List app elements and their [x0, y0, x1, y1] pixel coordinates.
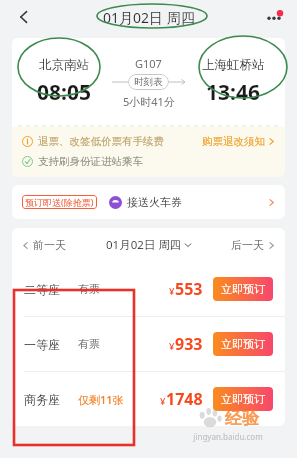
button[interactable]: 商务座 — [12, 372, 285, 426]
button[interactable]: 二等座 — [12, 262, 285, 316]
staticText: 商务座 — [24, 392, 60, 407]
staticText: ¥ — [169, 285, 175, 298]
staticText: 553 — [175, 278, 203, 300]
staticText: 01月02日 周四 — [106, 237, 182, 253]
staticText: 933 — [175, 333, 203, 355]
button[interactable]: 退票、改签低价票有手续费 — [22, 135, 275, 148]
button[interactable]: 立即预订 — [213, 332, 273, 356]
staticText: 立即预订 — [221, 337, 265, 351]
staticText: ¥ — [160, 395, 166, 408]
staticText: 13:46 — [206, 78, 260, 107]
staticText: 08:05 — [37, 78, 91, 107]
staticText: 上海虹桥站 — [202, 57, 265, 73]
staticText: 有票 — [78, 282, 100, 296]
button[interactable]: 立即预订 — [213, 387, 273, 411]
button[interactable]: 预订即送(除抢票) — [12, 185, 285, 219]
staticText: 时刻表 — [134, 76, 163, 88]
staticText: 前一天 — [33, 238, 66, 252]
staticText: 立即预订 — [221, 282, 265, 296]
staticText: 后一天 — [231, 238, 264, 252]
staticText: 经验 — [225, 408, 259, 429]
staticText: 一等座 — [24, 337, 60, 352]
button[interactable]: 前一天 — [22, 238, 72, 252]
staticText: 预订即送(除抢票) — [25, 196, 94, 208]
staticText: 支持刷身份证进站乘车 — [38, 155, 143, 168]
staticText: jingyan.baidu.com — [193, 431, 263, 442]
staticText: 有票 — [78, 337, 100, 351]
staticText: 5小时41分 — [123, 94, 175, 109]
staticText: 仅剩11张 — [78, 392, 124, 407]
button[interactable]: 一等座 — [12, 317, 285, 371]
staticText: 购票退改须知 — [202, 135, 265, 148]
staticText: G107 — [135, 56, 162, 71]
button[interactable]: 01月02日 周四 — [106, 237, 191, 253]
staticText: 立即预订 — [221, 392, 265, 406]
staticText: 接送火车券 — [127, 195, 182, 209]
staticText: 01月02日 周四 — [103, 8, 195, 27]
staticText: 二等座 — [24, 282, 60, 297]
staticText: ¥ — [169, 340, 175, 353]
button[interactable]: 后一天 — [225, 238, 275, 252]
button[interactable]: More options — [257, 0, 291, 34]
button[interactable]: 时刻表 — [134, 76, 163, 88]
staticText: 退票、改签低价票有手续费 — [38, 135, 164, 148]
button[interactable]: 立即预订 — [213, 277, 273, 301]
button[interactable]: Back — [8, 1, 40, 33]
staticText: 北京南站 — [39, 57, 89, 73]
staticText: 1748 — [166, 388, 203, 410]
